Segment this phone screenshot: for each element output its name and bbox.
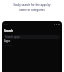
staticText: Easily search for the apps by <box>13 3 51 7</box>
staticText: Apps <box>4 39 11 43</box>
staticText: 9:41 <box>4 23 8 26</box>
staticText: Search apps <box>5 35 20 39</box>
staticText: All apps <box>4 44 13 47</box>
staticText: Search <box>4 29 13 33</box>
staticText: name or categories <box>19 8 45 12</box>
button[interactable]: Search apps <box>4 35 60 39</box>
